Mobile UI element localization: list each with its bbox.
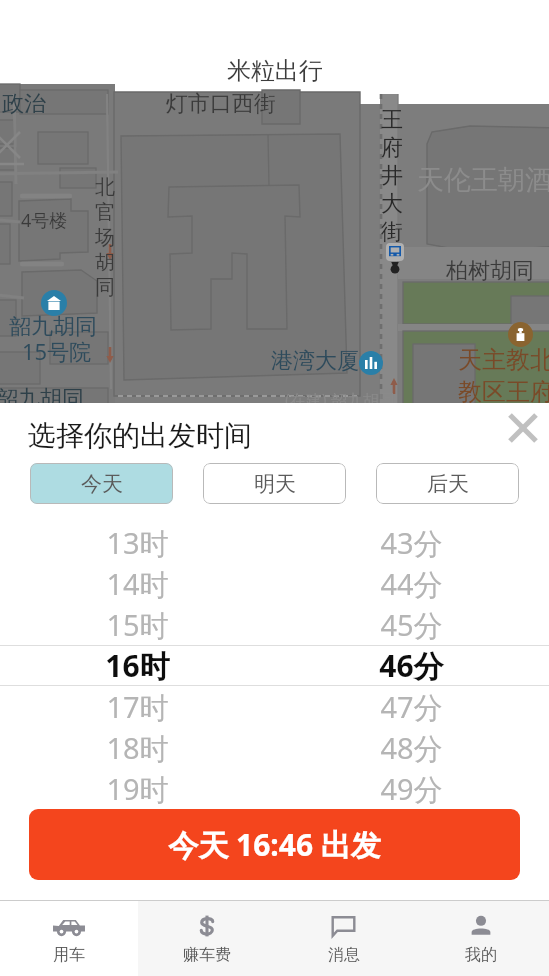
staticText: 街 bbox=[381, 218, 403, 246]
staticText: 明天 bbox=[254, 471, 296, 497]
staticText: 43分 bbox=[380, 523, 443, 563]
staticText: 赚车费 bbox=[183, 945, 231, 965]
staticText: 15号院 bbox=[22, 336, 92, 366]
staticText: 18时 bbox=[106, 728, 169, 768]
staticText: 胡 bbox=[95, 250, 115, 275]
staticText: 今天 16:46 出发 bbox=[168, 824, 381, 865]
button[interactable]: 明天 bbox=[203, 463, 346, 504]
staticText: 大 bbox=[381, 190, 403, 218]
staticText: 柏树胡同 bbox=[446, 257, 534, 285]
staticText: 15时 bbox=[106, 605, 169, 645]
staticText: 米粒出行 bbox=[227, 56, 323, 86]
staticText: 后天 bbox=[427, 471, 469, 497]
staticText: 消息 bbox=[328, 945, 360, 965]
staticText: 13时 bbox=[106, 523, 169, 563]
staticText: 17时 bbox=[106, 687, 169, 727]
staticText: 官 bbox=[95, 200, 115, 225]
button[interactable]: 消息 bbox=[275, 901, 412, 976]
button[interactable]: 用车 bbox=[0, 901, 138, 976]
staticText: 48分 bbox=[380, 728, 443, 768]
staticText: 今天 bbox=[81, 471, 123, 497]
staticText: 47分 bbox=[380, 687, 443, 727]
button[interactable]: 今天 bbox=[30, 463, 173, 504]
staticText: 主教堂在 bbox=[458, 409, 549, 439]
staticText: 同 bbox=[95, 275, 115, 300]
staticText: 教区王府井 bbox=[458, 377, 549, 407]
staticText: 14时 bbox=[106, 564, 169, 604]
staticText: 王 bbox=[381, 106, 403, 134]
staticText: 45分 bbox=[380, 605, 443, 645]
staticText: 港湾大厦 bbox=[271, 347, 359, 375]
staticText: 北 bbox=[95, 175, 115, 200]
staticText: 韶九胡同 bbox=[9, 313, 97, 341]
staticText: 44分 bbox=[380, 564, 443, 604]
button[interactable]: 今天 16:46 出发 bbox=[29, 809, 520, 880]
staticText: 4号楼 bbox=[21, 208, 68, 233]
staticText: 灯市口西街 bbox=[166, 90, 276, 118]
staticText: (在建) 韶九胡同 bbox=[285, 389, 395, 411]
button[interactable]: 赚车费 bbox=[138, 901, 275, 976]
staticText: 天伦王朝酒 bbox=[417, 163, 549, 197]
staticText: 政治 bbox=[2, 90, 46, 118]
staticText: 用车 bbox=[53, 945, 85, 965]
staticText: 19时 bbox=[106, 769, 169, 809]
staticText: 46分 bbox=[379, 645, 444, 686]
staticText: 16时 bbox=[105, 645, 170, 686]
button[interactable]: Close bbox=[500, 405, 546, 451]
staticText: 韶九胡同 bbox=[0, 385, 84, 413]
staticText: 我的 bbox=[465, 945, 497, 965]
staticText: 选择你的出发时间 bbox=[28, 418, 252, 453]
button[interactable]: 后天 bbox=[376, 463, 519, 504]
staticText: 49分 bbox=[380, 769, 443, 809]
button[interactable]: 我的 bbox=[412, 901, 549, 976]
staticText: 井 bbox=[381, 162, 403, 190]
staticText: 场 bbox=[95, 225, 115, 250]
staticText: 府 bbox=[381, 134, 403, 162]
staticText: 天主教北京 bbox=[458, 345, 549, 375]
